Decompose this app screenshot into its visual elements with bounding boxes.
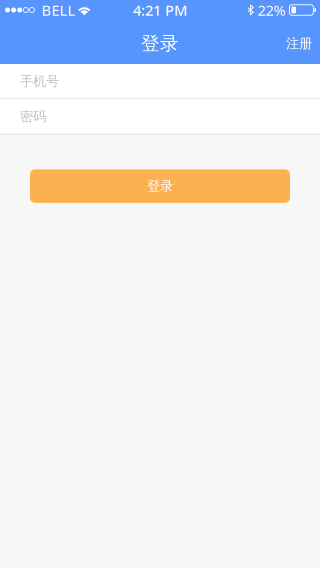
staticText: 登录: [147, 178, 173, 194]
staticText: 22%: [257, 0, 285, 20]
button[interactable]: 注册: [272, 20, 320, 64]
staticText: BELL: [41, 0, 75, 20]
button[interactable]: 密码: [0, 99, 320, 134]
staticText: 4:21 PM: [133, 0, 187, 20]
staticText: 手机号: [20, 73, 59, 89]
staticText: 登录: [141, 32, 179, 55]
staticText: 注册: [286, 35, 312, 52]
button[interactable]: 手机号: [0, 64, 320, 98]
staticText: 密码: [20, 108, 46, 125]
button[interactable]: 登录: [30, 169, 290, 203]
